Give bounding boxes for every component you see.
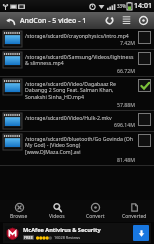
- button[interactable]: Videos: [38, 200, 76, 222]
- button[interactable]: Convert: [76, 200, 115, 222]
- staticText: /storage/sdcard0/bluetooth/Go Govinda (O…: [25, 135, 135, 156]
- button[interactable]: Selected: [138, 79, 151, 92]
- button[interactable]: /storage/sdcard0/crayonphysics/intro.mp4: [0, 29, 154, 50]
- button[interactable]: /storage/sdcard0/Samsung/Videos/lightnes…: [0, 50, 154, 77]
- button[interactable]: List: [119, 12, 134, 29]
- button[interactable]: Not selected: [138, 134, 151, 147]
- button[interactable]: /storage/sdcard0/bluetooth/Go Govinda (O…: [0, 132, 154, 166]
- staticText: McAfee Antivirus & Security: [23, 226, 101, 234]
- staticText: /storage/sdcard0/Video/Hulk-2.mkv: [25, 114, 112, 121]
- staticText: Converted: [122, 213, 147, 220]
- button[interactable]: /storage/sdcard0/Video/Hulk-2.mkv: [0, 111, 154, 132]
- button[interactable]: Back: [3, 14, 17, 28]
- staticText: /storage/sdcard0/Video/Dagabaaz Re Daban…: [25, 80, 135, 101]
- button[interactable]: Converted: [115, 200, 154, 222]
- staticText: 16028 Reviews: [54, 235, 81, 240]
- staticText: AndCon - 5 video - 1: [20, 16, 87, 26]
- staticText: 14:01: [134, 1, 152, 11]
- staticText: FREE: [24, 235, 33, 240]
- staticText: 81.48M: [25, 156, 135, 163]
- button[interactable]: Not selected: [138, 52, 151, 65]
- button[interactable]: Not selected: [138, 31, 151, 44]
- button[interactable]: Install: [133, 225, 149, 241]
- staticText: Videos: [49, 213, 65, 220]
- staticText: 696.14M: [25, 121, 135, 128]
- staticText: 33%: [117, 3, 126, 9]
- button[interactable]: Browse: [0, 200, 38, 222]
- staticText: /storage/sdcard0/crayonphysics/intro.mp4: [25, 32, 129, 39]
- staticText: 7.42M: [25, 39, 135, 46]
- staticText: 57.88M: [25, 101, 135, 108]
- staticText: Browse: [10, 213, 28, 220]
- staticText: /storage/sdcard0/Samsung/Videos/lightnes…: [25, 53, 135, 67]
- button[interactable]: /storage/sdcard0/Video/Dagabaaz Re Daban…: [0, 77, 154, 111]
- button[interactable]: McAfee Antivirus & Security: [3, 223, 151, 243]
- button[interactable]: Settings: [136, 12, 151, 29]
- button[interactable]: Not selected: [138, 113, 151, 126]
- staticText: Convert: [86, 213, 105, 220]
- button[interactable]: Refresh: [102, 12, 117, 29]
- staticText: 66.72M: [25, 67, 135, 74]
